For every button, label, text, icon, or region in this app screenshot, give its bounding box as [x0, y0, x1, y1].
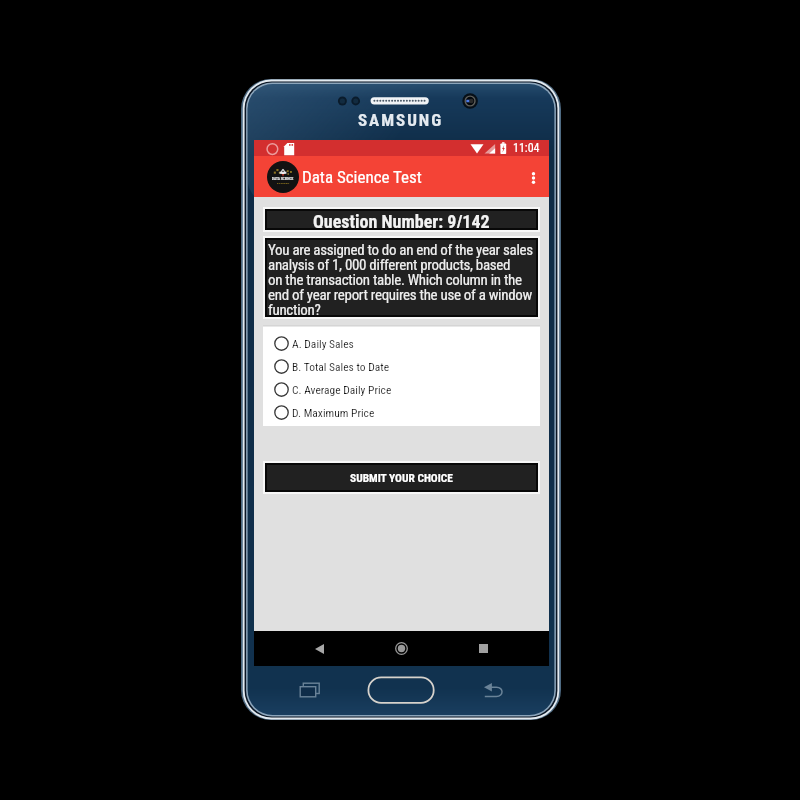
- staticText: 11:04: [513, 141, 540, 155]
- button[interactable]: C. Average Daily Price: [263, 378, 540, 401]
- button[interactable]: D. Maximum Price: [263, 401, 540, 424]
- button[interactable]: SUBMIT YOUR CHOICE: [263, 461, 540, 494]
- staticText: DATA SCIENCE: [272, 177, 294, 181]
- staticText: Question Number: 9/142: [313, 211, 490, 228]
- button[interactable]: More options: [520, 165, 546, 191]
- button[interactable]: B. Total Sales to Date: [263, 355, 540, 378]
- staticText: SUBMIT YOUR CHOICE: [350, 471, 453, 484]
- staticText: B. Total Sales to Date: [292, 360, 390, 373]
- button[interactable]: Home: [386, 631, 416, 666]
- staticText: SAMSUNG: [358, 110, 444, 130]
- button[interactable]: A. Daily Sales: [263, 332, 540, 355]
- button[interactable]: Back: [304, 631, 334, 666]
- staticText: You are assigned to do an end of the yea…: [268, 241, 533, 315]
- staticText: ACADEMY: [277, 182, 290, 185]
- staticText: A. Daily Sales: [292, 337, 354, 350]
- staticText: Data Science Test: [302, 167, 422, 187]
- staticText: C. Average Daily Price: [292, 383, 392, 396]
- staticText: D. Maximum Price: [292, 406, 375, 419]
- button[interactable]: Recent apps: [468, 631, 498, 666]
